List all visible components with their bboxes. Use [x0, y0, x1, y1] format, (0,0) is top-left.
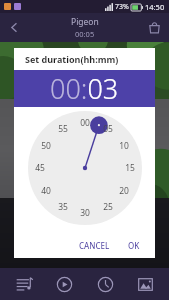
staticText: 45 — [35, 162, 45, 174]
staticText: 10 — [119, 140, 129, 152]
button[interactable]: Play — [47, 268, 81, 300]
staticText: 25 — [103, 201, 113, 213]
button[interactable]: Cart — [140, 13, 169, 42]
staticText: 00 — [80, 117, 90, 129]
staticText: 40 — [41, 185, 51, 197]
staticText: 30 — [80, 207, 90, 219]
staticText: 00:05 — [75, 29, 95, 39]
button[interactable]: Gallery — [128, 268, 162, 300]
staticText: CANCEL — [79, 240, 110, 251]
staticText: 14:50 — [145, 2, 165, 12]
staticText: Set duration(hh:mm) — [25, 53, 119, 65]
staticText: 55 — [58, 123, 68, 135]
button[interactable]: Back — [0, 13, 29, 42]
button[interactable]: CANCEL — [72, 236, 117, 255]
staticText: 50 — [41, 140, 51, 152]
staticText: 35 — [58, 201, 68, 213]
staticText: 00:03 — [50, 70, 119, 107]
staticText: 73% — [115, 2, 129, 12]
button[interactable]: Minute picker — [28, 111, 142, 225]
staticText: OK — [128, 240, 140, 251]
button[interactable]: Timer — [88, 268, 122, 300]
staticText: 05 — [103, 123, 113, 135]
button[interactable]: Playlist — [7, 268, 41, 300]
staticText: 20 — [119, 185, 129, 197]
button[interactable]: OK — [121, 236, 147, 255]
staticText: Pigeon — [71, 16, 99, 28]
staticText: 15 — [125, 162, 135, 174]
